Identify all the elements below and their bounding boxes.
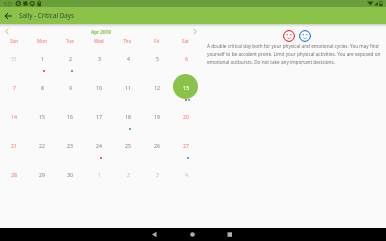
button[interactable]: 18 bbox=[113, 103, 142, 132]
staticText: 20 bbox=[183, 113, 189, 120]
button[interactable]: 19 bbox=[142, 103, 171, 132]
button[interactable]: 4 bbox=[113, 45, 142, 74]
staticText: 3 bbox=[156, 171, 159, 178]
staticText: 18 bbox=[125, 113, 131, 120]
button[interactable]: Next month bbox=[188, 27, 202, 36]
staticText: 16 bbox=[67, 113, 73, 120]
button[interactable]: 25 bbox=[113, 132, 142, 161]
staticText: Mon bbox=[37, 38, 47, 44]
button[interactable]: 11 bbox=[113, 74, 142, 103]
button[interactable]: 8 bbox=[28, 74, 56, 103]
staticText: 4 bbox=[127, 55, 130, 62]
staticText: 29 bbox=[39, 171, 45, 178]
button[interactable]: 26 bbox=[142, 132, 171, 161]
button[interactable]: 29 bbox=[28, 161, 56, 190]
staticText: Sat bbox=[182, 38, 189, 44]
staticText: Fri bbox=[154, 38, 160, 44]
button[interactable]: 5 bbox=[142, 45, 171, 74]
button[interactable]: 22 bbox=[28, 132, 56, 161]
button[interactable]: 2 bbox=[56, 45, 84, 74]
staticText: 3 bbox=[98, 55, 101, 62]
staticText: Sally - Critical Days bbox=[19, 11, 75, 20]
staticText: 2 bbox=[127, 171, 130, 178]
staticText: 5 bbox=[156, 55, 159, 62]
staticText: 10 bbox=[96, 84, 102, 91]
button[interactable]: 16 bbox=[56, 103, 84, 132]
button[interactable]: 6 bbox=[171, 45, 200, 74]
button[interactable]: 14 bbox=[0, 103, 28, 132]
staticText: Apr 2019 bbox=[91, 29, 111, 35]
staticText: 14 bbox=[11, 113, 17, 120]
staticText: 31 bbox=[11, 55, 17, 62]
button[interactable]: 12 bbox=[142, 74, 171, 103]
staticText: 27 bbox=[183, 142, 189, 149]
button[interactable]: 23 bbox=[56, 132, 84, 161]
button[interactable]: 1 bbox=[28, 45, 56, 74]
staticText: 6 bbox=[185, 55, 188, 62]
staticText: Wed bbox=[94, 38, 104, 44]
staticText: 1 bbox=[41, 55, 44, 62]
button[interactable]: 30 bbox=[56, 161, 84, 190]
staticText: Sun bbox=[10, 38, 19, 44]
button[interactable]: 28 bbox=[0, 161, 28, 190]
staticText: 1 bbox=[98, 171, 101, 178]
button[interactable]: 27 bbox=[171, 132, 200, 161]
button[interactable]: 13 bbox=[171, 74, 200, 103]
staticText: 28 bbox=[11, 171, 17, 178]
staticText: 5:51 bbox=[4, 1, 14, 7]
staticText: 26 bbox=[154, 142, 160, 149]
staticText: 13 bbox=[183, 84, 189, 91]
staticText: 30 bbox=[67, 171, 73, 178]
button[interactable]: 9 bbox=[56, 74, 84, 103]
button[interactable]: 24 bbox=[84, 132, 113, 161]
button[interactable]: 15 bbox=[28, 103, 56, 132]
staticText: 22 bbox=[39, 142, 45, 149]
staticText: 15 bbox=[39, 113, 45, 120]
staticText: 11 bbox=[125, 84, 131, 91]
button[interactable]: Back bbox=[0, 8, 16, 24]
staticText: 19 bbox=[154, 113, 160, 120]
staticText: 8 bbox=[41, 84, 44, 91]
button[interactable]: 17 bbox=[84, 103, 113, 132]
button[interactable]: 10 bbox=[84, 74, 113, 103]
staticText: 24 bbox=[96, 142, 102, 149]
staticText: 12 bbox=[154, 84, 160, 91]
button[interactable]: 3 bbox=[84, 45, 113, 74]
staticText: A double critical day both for your phys… bbox=[207, 43, 384, 66]
staticText: 7 bbox=[13, 84, 16, 91]
staticText: Thu bbox=[123, 38, 132, 44]
staticText: 4 bbox=[185, 171, 188, 178]
staticText: 23 bbox=[67, 142, 73, 149]
button[interactable]: Previous month bbox=[0, 27, 14, 36]
staticText: 17 bbox=[96, 113, 102, 120]
staticText: 2 bbox=[69, 55, 72, 62]
button[interactable]: 20 bbox=[171, 103, 200, 132]
button[interactable]: 21 bbox=[0, 132, 28, 161]
staticText: Tue bbox=[66, 38, 74, 44]
staticText: 9 bbox=[69, 84, 72, 91]
staticText: 21 bbox=[11, 142, 17, 149]
staticText: 25 bbox=[125, 142, 131, 149]
button[interactable]: 31 bbox=[0, 45, 28, 74]
button[interactable]: 7 bbox=[0, 74, 28, 103]
